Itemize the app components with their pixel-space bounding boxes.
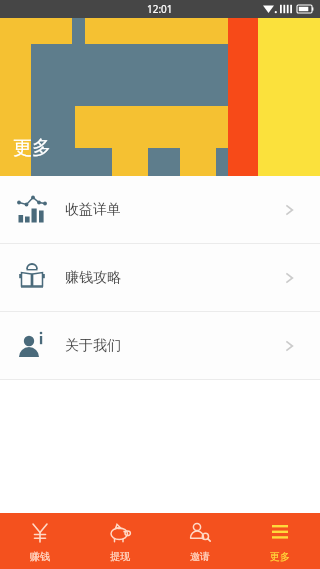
button[interactable]: 更多 xyxy=(240,513,320,569)
button[interactable]: 赚钱攻略 xyxy=(0,244,320,311)
staticText: 赚钱 xyxy=(30,550,50,563)
staticText: 更多 xyxy=(13,136,51,160)
staticText: 邀请 xyxy=(190,550,210,563)
button[interactable]: 赚钱 xyxy=(0,513,80,569)
staticText: 关于我们 xyxy=(65,337,121,355)
staticText: 12:01 xyxy=(147,2,173,16)
staticText: 赚钱攻略 xyxy=(65,269,121,287)
button[interactable]: 关于我们 xyxy=(0,312,320,379)
staticText: 收益详单 xyxy=(65,201,121,219)
staticText: 更多 xyxy=(270,550,290,563)
button[interactable]: 提现 xyxy=(80,513,160,569)
button[interactable]: 收益详单 xyxy=(0,176,320,243)
staticText: 提现 xyxy=(110,550,130,563)
button[interactable]: 邀请 xyxy=(160,513,240,569)
